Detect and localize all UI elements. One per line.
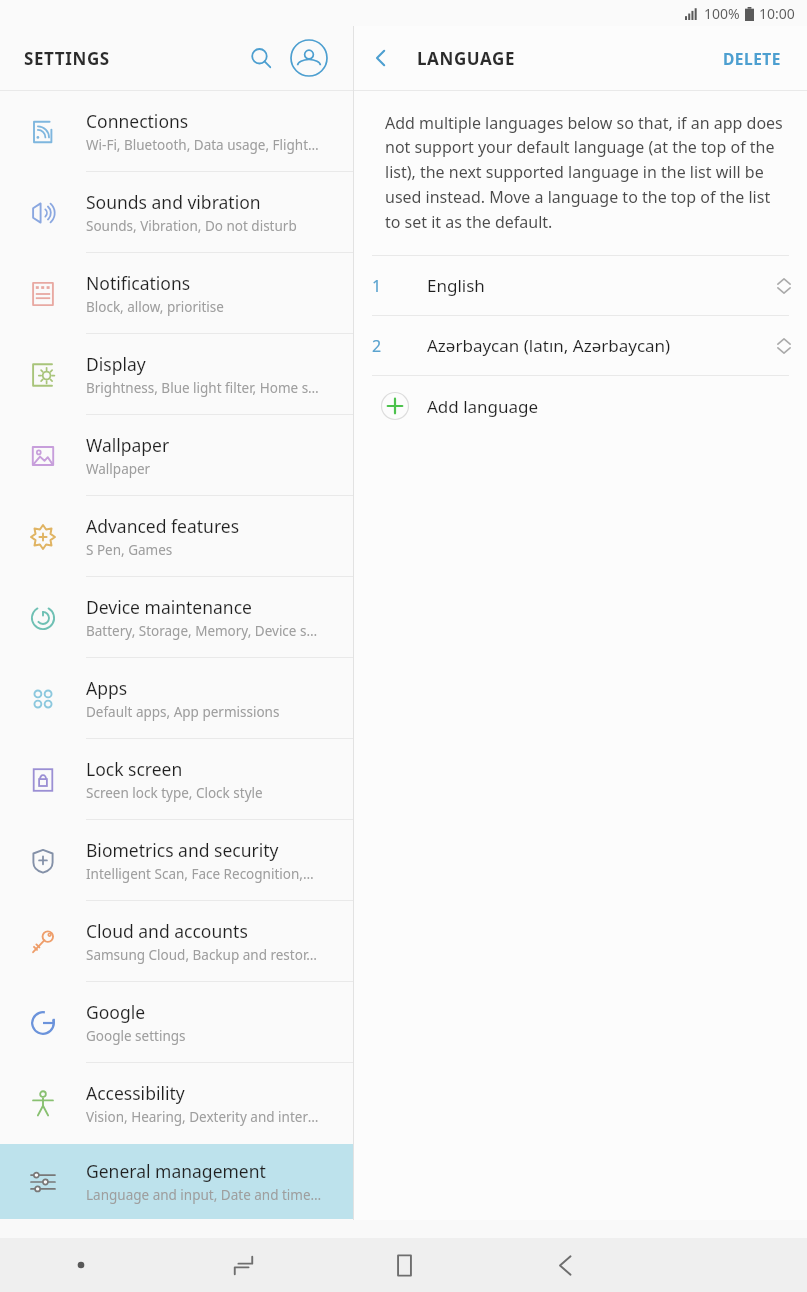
staticText: Azərbaycan (latın, Azərbaycan)	[427, 334, 761, 357]
button[interactable]: Wallpaper	[0, 415, 353, 496]
staticText: 1	[372, 275, 382, 297]
button[interactable]: Advanced features	[0, 496, 353, 577]
button[interactable]: Recents	[162, 1238, 324, 1292]
staticText: Google	[86, 1000, 146, 1024]
staticText: Display	[86, 352, 146, 376]
button[interactable]: Google	[0, 982, 353, 1063]
staticText: 2	[372, 335, 382, 357]
button[interactable]: Add language	[354, 376, 807, 436]
staticText: Device maintenance	[86, 595, 252, 619]
button[interactable]: Reorder	[761, 323, 807, 369]
staticText: Add language	[427, 395, 539, 418]
button[interactable]: Accessibility	[0, 1063, 353, 1144]
staticText: Advanced features	[86, 514, 240, 538]
staticText: Lock screen	[86, 757, 183, 781]
staticText: Cloud and accounts	[86, 919, 248, 943]
button[interactable]: Home	[324, 1238, 485, 1292]
button[interactable]: Back	[354, 31, 408, 85]
staticText: Sounds and vibration	[86, 190, 261, 214]
staticText: General management	[86, 1159, 266, 1183]
button[interactable]: Search	[239, 36, 283, 80]
button[interactable]: Apps	[0, 658, 353, 739]
staticText: Brightness, Blue light filter, Home sc…	[86, 379, 323, 397]
staticText: Wi-Fi, Bluetooth, Data usage, Flight…	[86, 136, 319, 154]
staticText: 100%	[704, 4, 740, 23]
button[interactable]: Notifications	[0, 253, 353, 334]
staticText: Wallpaper	[86, 433, 170, 457]
staticText: Screen lock type, Clock style	[86, 784, 263, 802]
staticText: Vision, Hearing, Dexterity and intera…	[86, 1108, 323, 1126]
button[interactable]: Device maintenance	[0, 577, 353, 658]
staticText: Block, allow, prioritise	[86, 298, 224, 316]
button[interactable]: 2	[354, 316, 807, 375]
staticText: Battery, Storage, Memory, Device se…	[86, 622, 323, 640]
staticText: S Pen, Games	[86, 541, 173, 559]
staticText: English	[427, 274, 761, 297]
staticText: Notifications	[86, 271, 191, 295]
staticText: Intelligent Scan, Face Recognition,…	[86, 865, 314, 883]
button[interactable]: Account	[287, 36, 331, 80]
staticText: Apps	[86, 676, 128, 700]
button[interactable]: DELETE	[715, 40, 789, 77]
staticText: Default apps, App permissions	[86, 703, 280, 721]
button[interactable]: Sounds and vibration	[0, 172, 353, 253]
staticText: Samsung Cloud, Backup and restor…	[86, 946, 317, 964]
staticText: SETTINGS	[24, 47, 110, 70]
staticText: Connections	[86, 109, 189, 133]
staticText: LANGUAGE	[417, 47, 516, 70]
button[interactable]: Back	[485, 1238, 646, 1292]
button[interactable]: 1	[354, 256, 807, 315]
button[interactable]: Lock screen	[0, 739, 353, 820]
staticText: 10:00	[759, 4, 795, 23]
button[interactable]: Cloud and accounts	[0, 901, 353, 982]
button[interactable]: Menu	[0, 1238, 162, 1292]
staticText: Add multiple languages below so that, if…	[385, 112, 785, 233]
staticText: Accessibility	[86, 1081, 185, 1105]
staticText: Google settings	[86, 1027, 186, 1045]
button[interactable]: General management	[0, 1144, 353, 1219]
staticText: DELETE	[723, 48, 781, 69]
staticText: Biometrics and security	[86, 838, 279, 862]
staticText: Sounds, Vibration, Do not disturb	[86, 217, 297, 235]
staticText: Language and input, Date and time,…	[86, 1186, 323, 1204]
button[interactable]: Display	[0, 334, 353, 415]
button[interactable]: Connections	[0, 91, 353, 172]
button[interactable]: Biometrics and security	[0, 820, 353, 901]
button[interactable]: Reorder	[761, 263, 807, 309]
staticText: Wallpaper	[86, 460, 151, 478]
